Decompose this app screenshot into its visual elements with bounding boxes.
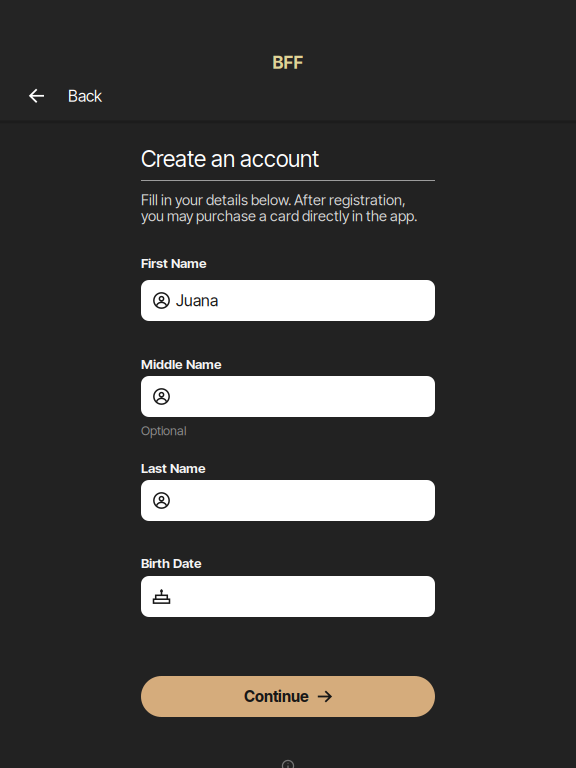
button[interactable]: Continue [141, 676, 435, 717]
button[interactable]: Back [11, 77, 116, 115]
button[interactable]: Middle Name [141, 376, 435, 417]
button[interactable]: Last Name [141, 480, 435, 521]
staticText: First Name [141, 255, 207, 271]
staticText: Create an account [141, 145, 319, 172]
staticText: Back [68, 86, 102, 106]
staticText: Continue [244, 687, 309, 706]
staticText: Juana [176, 291, 218, 310]
button[interactable]: First Name, Juana [141, 280, 435, 321]
staticText: you may purchase a card directly in the … [141, 207, 417, 225]
button[interactable]: Information [272, 752, 304, 768]
staticText: Middle Name [141, 356, 222, 372]
staticText: BFF [272, 52, 303, 73]
staticText: Optional [141, 423, 186, 438]
button[interactable]: Birth Date [141, 576, 435, 617]
staticText: Birth Date [141, 555, 202, 571]
staticText: Last Name [141, 460, 206, 476]
staticText: Fill in your details below. After regist… [141, 191, 406, 209]
